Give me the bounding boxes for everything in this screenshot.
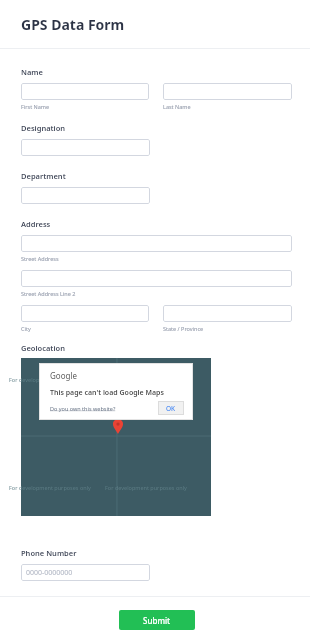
button[interactable] [21,270,292,287]
staticText: This page can't load Google Maps correct… [50,388,185,398]
staticText: OK [166,404,176,413]
button[interactable]: 0000-0000000 [21,564,150,581]
staticText: GPS Data Form [21,15,125,34]
staticText: Street Address [21,255,59,262]
staticText: City [21,325,31,332]
staticText: For development purposes only [9,376,91,383]
button[interactable] [163,305,292,322]
button[interactable] [21,235,292,252]
button[interactable] [21,187,150,204]
staticText: Designation [21,123,66,133]
button[interactable]: Do you own this website? [50,405,116,412]
button[interactable]: OK [158,401,184,415]
staticText: Phone Number [21,548,77,558]
staticText: For development purposes only [105,484,187,491]
button[interactable] [21,83,149,100]
staticText: Geolocation [21,343,65,353]
button[interactable]: Map [21,358,211,516]
button[interactable] [163,83,292,100]
button[interactable] [21,305,149,322]
staticText: First Name [21,103,50,110]
staticText: Last Name [163,103,191,110]
button[interactable]: Submit [119,610,195,630]
staticText: Submit [143,615,171,626]
staticText: Google [50,370,77,381]
staticText: Address [21,219,51,229]
staticText: For development purposes only [9,484,91,491]
staticText: Street Address Line 2 [21,290,76,297]
button[interactable] [21,139,150,156]
staticText: 0000-0000000 [26,568,73,578]
staticText: Department [21,171,66,181]
staticText: Name [21,67,43,77]
staticText: State / Province [163,325,204,332]
